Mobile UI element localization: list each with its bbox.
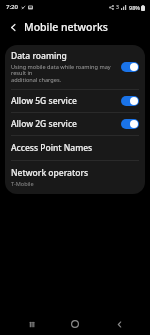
staticText: Access Point Names [11, 142, 93, 154]
button[interactable]: Access Point Names [5, 136, 145, 160]
staticText: Network operators [11, 167, 89, 179]
staticText: 7:20 [6, 3, 18, 11]
button[interactable]: Back [107, 313, 131, 335]
button[interactable]: Home [63, 313, 87, 335]
staticText: T-Mobile [11, 180, 34, 188]
staticText: Allow 5G service [11, 95, 77, 107]
staticText: Using mobile data while roaming may resu… [11, 63, 117, 84]
staticText: Mobile networks [24, 20, 108, 34]
staticText: Allow 2G service [11, 118, 77, 130]
button[interactable]: Toggle on [121, 96, 139, 106]
button[interactable]: Network operators [5, 161, 145, 194]
button[interactable]: Toggle on [121, 62, 139, 72]
button[interactable]: Back [4, 18, 22, 36]
staticText: Data roaming [11, 50, 67, 62]
button[interactable]: Allow 5G service [5, 90, 145, 112]
button[interactable]: Data roaming [5, 45, 145, 89]
staticText: 98% [129, 4, 140, 11]
button[interactable]: Recent apps [20, 313, 44, 335]
staticText: 3 [116, 4, 119, 11]
button[interactable]: Toggle on [121, 119, 139, 129]
button[interactable]: Allow 2G service [5, 113, 145, 135]
